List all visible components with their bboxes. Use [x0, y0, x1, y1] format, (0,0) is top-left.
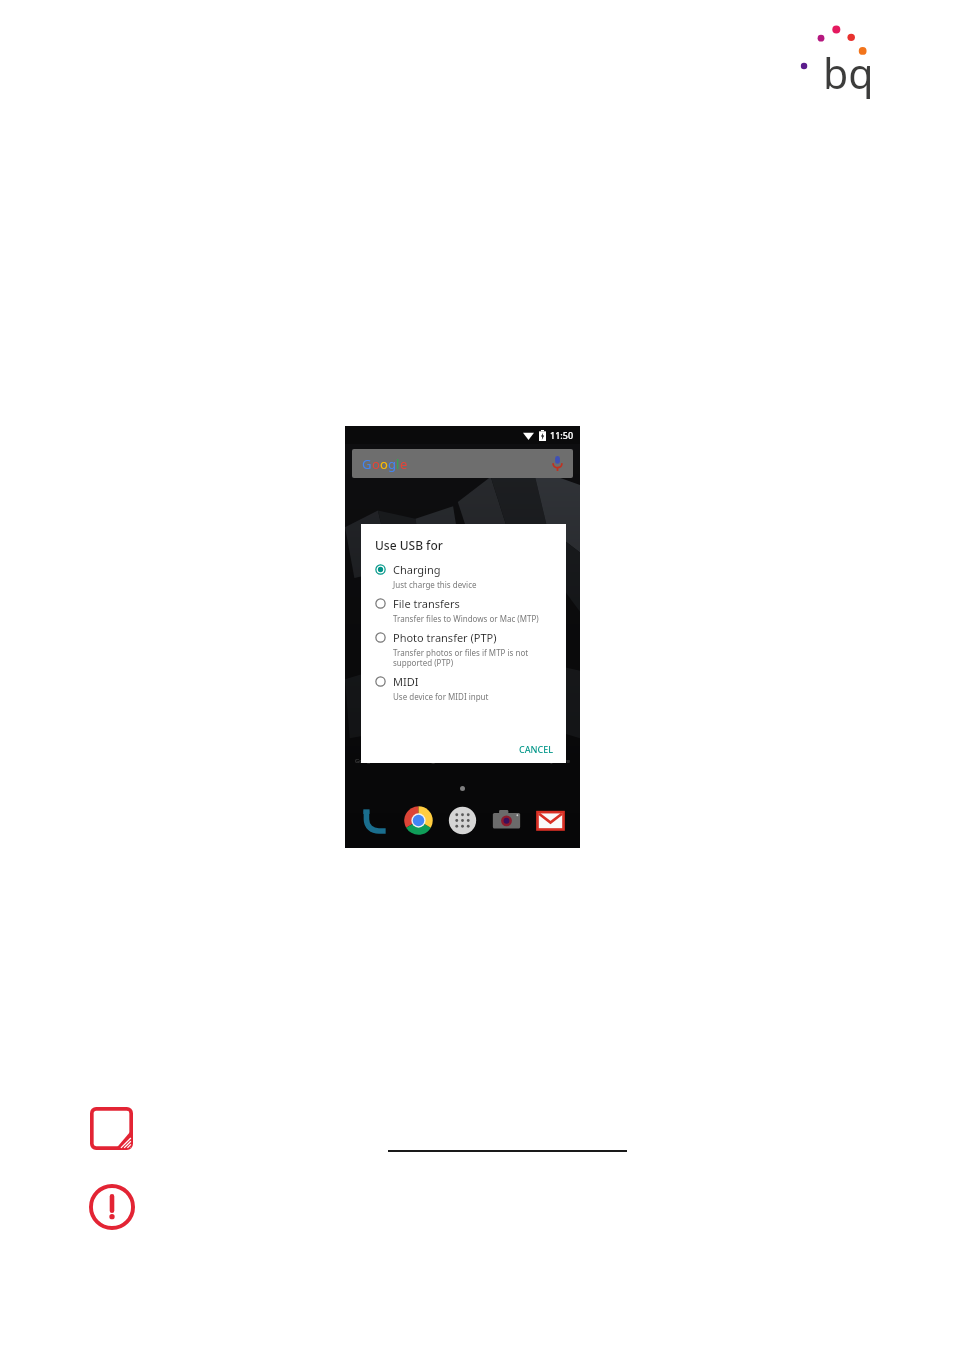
- staticText: MIDI: [393, 674, 419, 689]
- staticText: g: [388, 455, 396, 473]
- staticText: Photo transfer (PTP): [393, 630, 497, 645]
- staticText: 11:50: [550, 429, 574, 441]
- staticText: Google: [355, 757, 376, 765]
- button[interactable]: CANCEL: [514, 740, 559, 758]
- button[interactable]: Chrome: [403, 805, 434, 836]
- other: Voice search: [552, 456, 563, 471]
- button[interactable]: File transfers: [375, 596, 558, 624]
- staticText: YouTube: [478, 757, 503, 765]
- staticText: Charging: [393, 562, 441, 577]
- staticText: Play Store: [542, 757, 570, 765]
- staticText: l: [396, 455, 400, 473]
- staticText: Transfer photos or files if MTP is not s…: [393, 647, 529, 668]
- staticText: G: [362, 455, 372, 473]
- staticText: e: [400, 455, 408, 473]
- button[interactable]: All apps: [447, 805, 478, 836]
- button[interactable]: Photo transfer (PTP): [375, 630, 558, 668]
- button[interactable]: Camera: [491, 805, 522, 836]
- staticText: Just charge this device: [393, 579, 477, 590]
- staticText: Use device for MIDI input: [393, 691, 489, 702]
- staticText: o: [372, 455, 380, 473]
- staticText: bq: [823, 45, 874, 101]
- staticText: CANCEL: [519, 743, 554, 755]
- staticText: o: [380, 455, 388, 473]
- button[interactable]: G: [352, 449, 573, 478]
- button[interactable]: Gmail: [535, 805, 566, 836]
- button[interactable]: Charging: [375, 562, 558, 590]
- staticText: Settings: [415, 757, 438, 765]
- staticText: Use USB for: [375, 537, 443, 553]
- button[interactable]: MIDI: [375, 674, 558, 702]
- staticText: File transfers: [393, 596, 460, 611]
- button[interactable]: Phone: [359, 805, 390, 836]
- staticText: Transfer files to Windows or Mac (MTP): [393, 613, 539, 624]
